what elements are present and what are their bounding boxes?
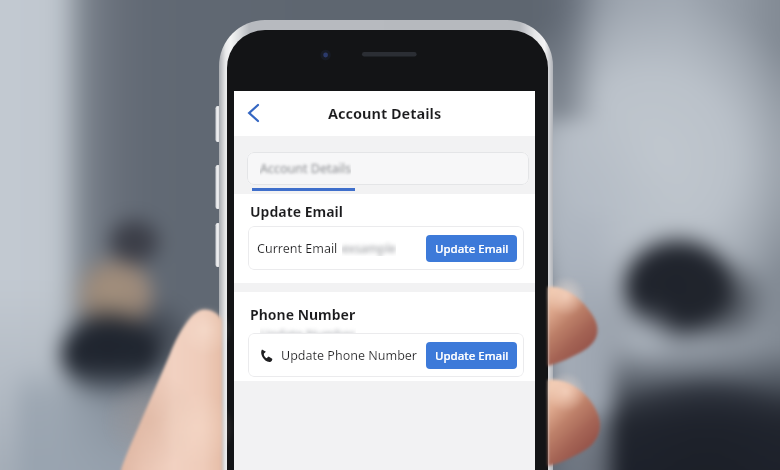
- staticText: Update Number: [260, 326, 356, 343]
- staticText: Update Email: [435, 241, 509, 257]
- button[interactable]: Back: [240, 100, 266, 126]
- staticText: Account Details: [260, 160, 351, 177]
- button[interactable]: Account Details: [247, 152, 529, 185]
- button[interactable]: Update Email: [426, 235, 517, 262]
- staticText: exsample: [342, 240, 396, 256]
- staticText: Update Phone Number: [281, 347, 418, 364]
- staticText: Update Email: [435, 348, 509, 364]
- staticText: Update Email: [250, 202, 343, 221]
- staticText: Account Details: [328, 103, 442, 123]
- button[interactable]: Update Email: [426, 342, 517, 369]
- staticText: Phone Number: [250, 305, 356, 324]
- staticText: Current Email: [257, 240, 338, 257]
